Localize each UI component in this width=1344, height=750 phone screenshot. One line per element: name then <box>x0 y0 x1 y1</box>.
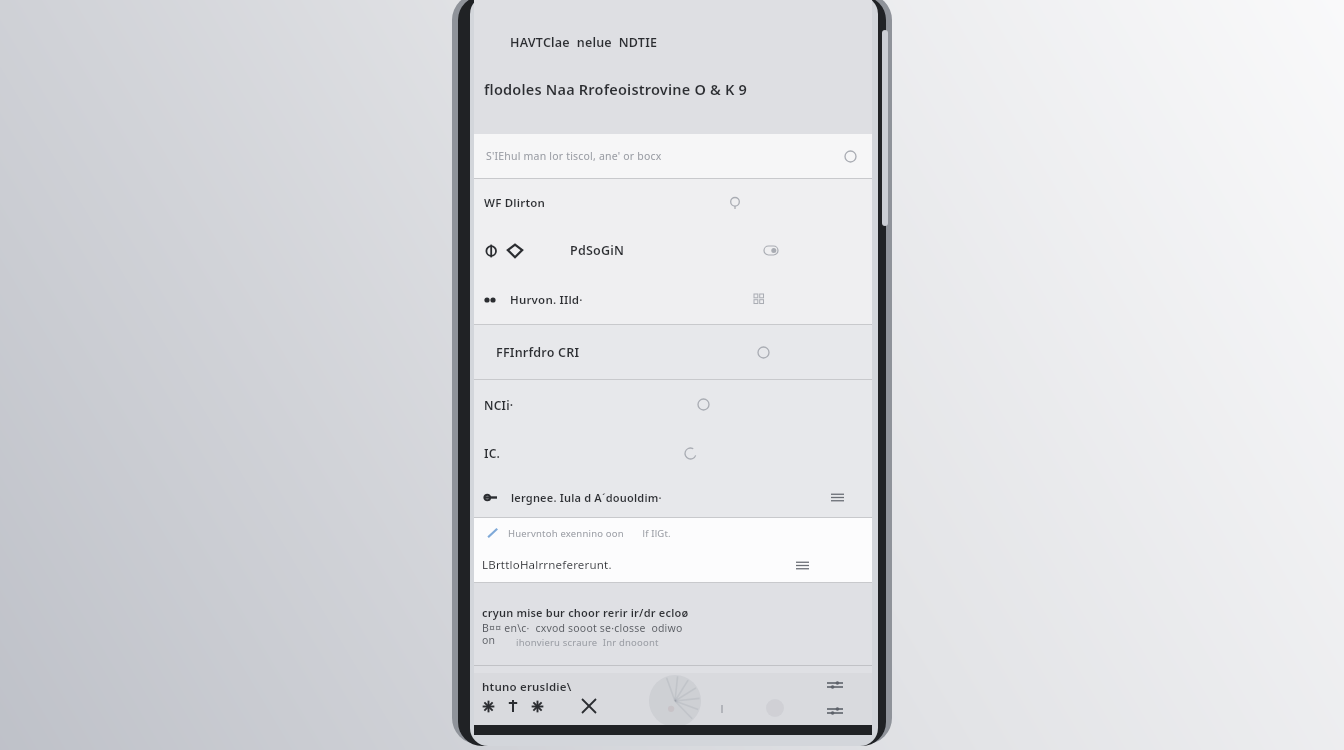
staticText: htuno erusldie\ <box>482 679 572 695</box>
button[interactable]: Accessibility <box>474 477 872 517</box>
button[interactable]: Preferences <box>474 548 872 582</box>
staticText: flodoles Naa Rrofeoistrovine O & K 9 <box>484 79 747 99</box>
staticText: PdSoGiN <box>570 242 625 259</box>
staticText: ihonvieru scraure Inr dnooont <box>516 636 659 649</box>
staticText: S'IEhul man lor tiscol, ane' or bocx <box>486 149 662 163</box>
staticText: Huervntoh exennino oon lf IlGt. <box>508 527 671 540</box>
staticText: lergnee. Iula d A´douoldim· <box>511 490 662 505</box>
button[interactable]: Display <box>474 325 872 379</box>
staticText: NCIi· <box>484 397 514 413</box>
staticText: Hurvon. IIld· <box>510 292 583 308</box>
button[interactable]: Bluetooth <box>474 226 872 275</box>
staticText: cryun mise bur choor rerir ir/dr ecloø <box>482 605 689 620</box>
button[interactable]: Huervntoh exennino oon lf IlGt. <box>474 518 872 548</box>
button[interactable]: Menu <box>824 701 846 721</box>
staticText: HAVTClae nelue NDTIE <box>510 34 658 51</box>
staticText: on <box>482 633 496 647</box>
button[interactable]: Wi-Fi <box>474 179 872 226</box>
button[interactable]: Search field <box>474 134 872 178</box>
button[interactable]: Sort <box>824 675 846 695</box>
button[interactable]: NFC <box>474 380 872 429</box>
button[interactable]: Network <box>474 275 872 324</box>
staticText: B¤¤ en\c· cxvod sooot se·closse odiwo <box>482 621 683 635</box>
staticText: IC. <box>484 445 501 461</box>
staticText: LBrttloHalrrnefererunt. <box>482 557 612 573</box>
staticText: FFInrfdro CRI <box>496 344 580 361</box>
button[interactable]: Location <box>474 429 872 477</box>
staticText: WF Dlirton <box>484 195 546 211</box>
